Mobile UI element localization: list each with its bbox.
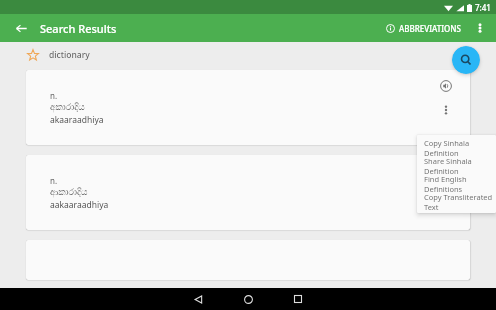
button[interactable]: Back [183,288,213,310]
staticText: Share Sinhala Definition [424,156,496,174]
staticText: Copy Transliterated Text [424,192,496,210]
button[interactable]: Favorite [24,46,42,64]
staticText: aakaaraadhiya [50,199,109,211]
staticText: අකාරාදිය [50,103,85,112]
button[interactable]: Find English Definitions [417,174,496,192]
button[interactable]: n. [26,155,470,230]
staticText: n. [50,175,58,186]
button[interactable]: Copy Sinhala Definition [417,138,496,156]
button[interactable]: Back [10,17,32,39]
button[interactable]: Copy Transliterated Text [417,192,496,210]
staticText: Find English Definitions [424,174,496,192]
button[interactable]: Play pronunciation [436,76,456,96]
staticText: ABBREVIATIONS [399,23,461,34]
staticText: Search Results [40,21,117,36]
staticText: n. [50,90,58,101]
button[interactable]: More options [440,183,456,199]
button[interactable]: More options [470,18,490,38]
button[interactable]: Recent apps [283,288,313,310]
staticText: 7:41 [475,2,491,13]
button[interactable]: ABBREVIATIONS [383,19,464,38]
staticText: ආකාරාදිය [50,188,88,197]
staticText: dictionary [49,49,90,61]
button[interactable]: Home [233,288,263,310]
button[interactable]: Share Sinhala Definition [417,156,496,174]
button[interactable]: More options [438,102,454,118]
staticText: akaaraadhiya [50,114,104,126]
staticText: Copy Sinhala Definition [424,138,496,156]
button[interactable]: Search [452,46,480,74]
button[interactable]: n. [26,70,470,145]
